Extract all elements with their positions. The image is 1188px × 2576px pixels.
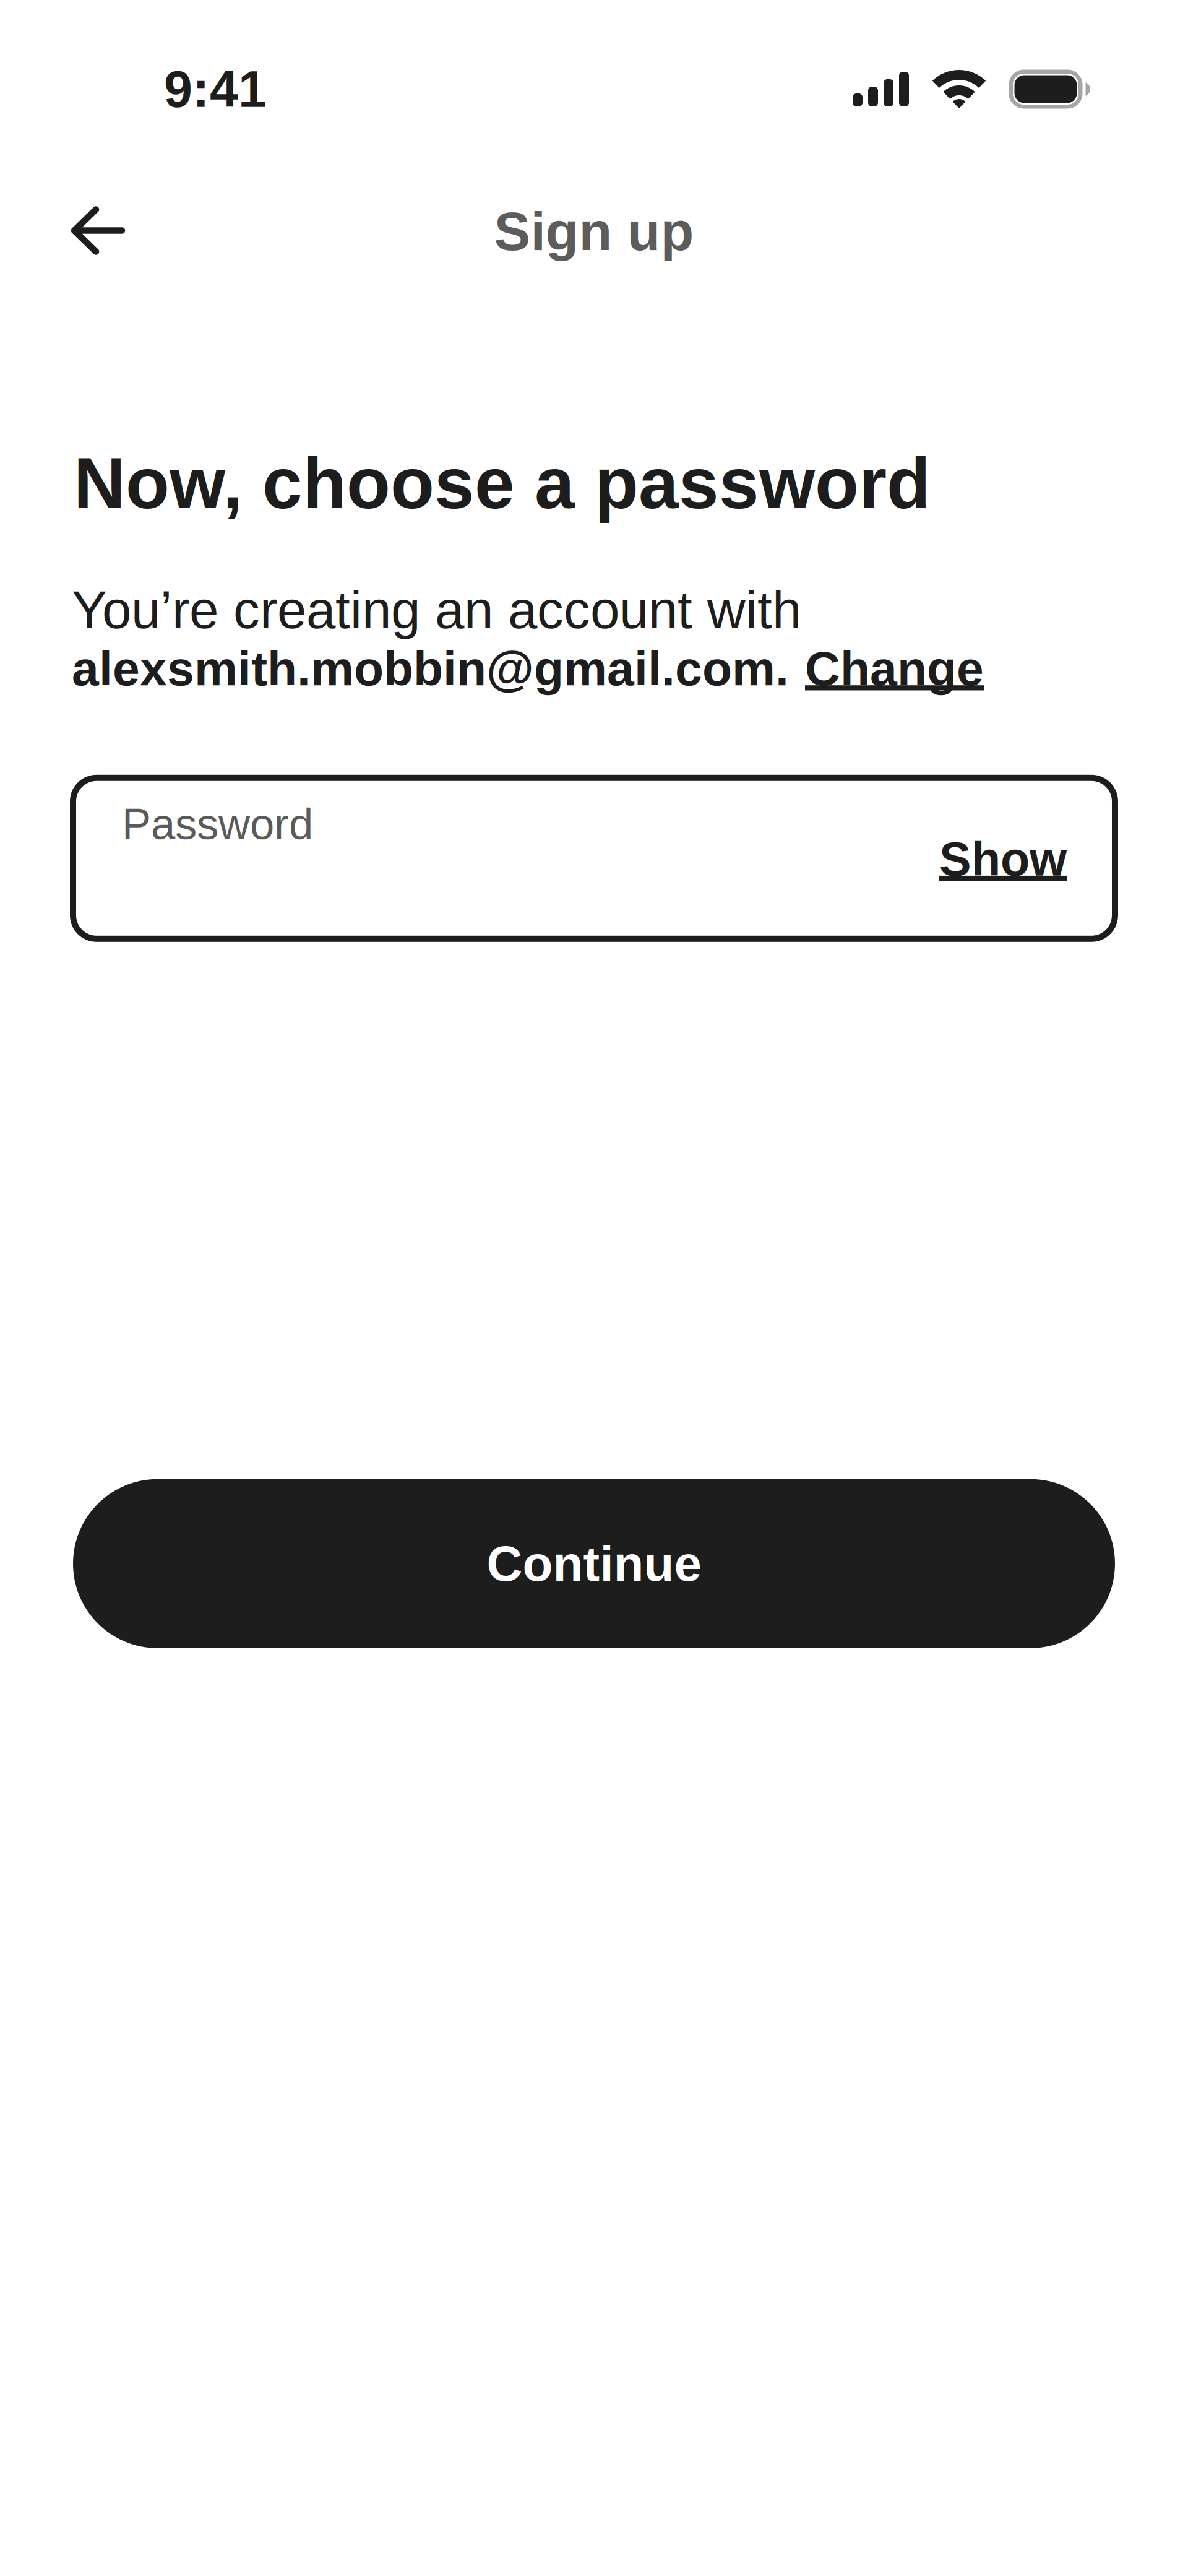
staticText: Password	[122, 800, 313, 848]
button[interactable]: Password	[73, 778, 1115, 939]
button[interactable]: Show	[939, 832, 1067, 886]
button[interactable]: Change	[805, 641, 984, 696]
staticText: Now, choose a password	[74, 443, 931, 523]
button[interactable]: Continue	[73, 1479, 1115, 1648]
staticText: Sign up	[494, 201, 694, 262]
staticText: Continue	[487, 1536, 701, 1591]
staticText: You’re creating an account with	[72, 580, 801, 639]
staticText: 9:41	[164, 61, 267, 118]
button[interactable]: Back	[68, 202, 128, 254]
staticText: Change	[805, 641, 984, 696]
staticText: alexsmith.mobbin@gmail.com.	[72, 641, 789, 696]
staticText: Show	[939, 832, 1067, 886]
